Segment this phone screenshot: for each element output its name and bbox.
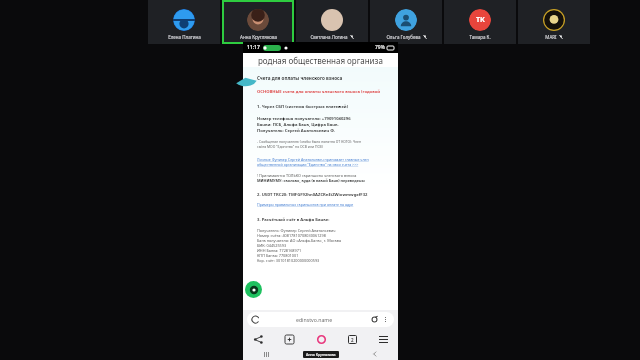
staticText: ТК xyxy=(476,15,485,25)
button[interactable]: Menu xyxy=(376,332,390,346)
staticText: 2 xyxy=(351,337,354,343)
button[interactable]: Анна Круглякова xyxy=(222,0,294,44)
button[interactable]: Home xyxy=(316,349,326,359)
staticText: Кор. счёт: 30101810200000000593 xyxy=(257,258,320,263)
button[interactable]: More options xyxy=(382,316,389,323)
staticText: 3. Расчётный счёт в Альфа Банке: xyxy=(257,217,330,223)
staticText: Счета для оплаты членского взноса xyxy=(257,75,343,81)
staticText: Банки: ПСБ, Альфа Банк, Цифра Банк. xyxy=(257,122,339,128)
staticText: Личные Фуникер Сергей Анатольевич приним… xyxy=(257,157,369,162)
staticText: Тамара К. xyxy=(469,34,491,40)
button[interactable]: MARI xyxy=(518,0,590,44)
other: Share page xyxy=(371,316,378,323)
button[interactable]: Светлана Логина xyxy=(296,0,368,44)
staticText: Номер телефона получателя: +79091040296 xyxy=(257,116,351,122)
button[interactable]: Chat xyxy=(245,281,262,298)
button[interactable]: Home xyxy=(314,332,328,346)
staticText: Анна Круглякова xyxy=(240,34,277,40)
staticText: 11:17 xyxy=(247,44,260,51)
staticText: БИК: 044525593 xyxy=(257,243,287,248)
button[interactable]: Share xyxy=(251,332,265,346)
button[interactable]: Reload xyxy=(247,312,394,327)
staticText: ! Принимаются ТОЛЬКО скриншоты членского… xyxy=(257,173,357,178)
staticText: общественной организации "Единство" на с… xyxy=(257,162,359,167)
staticText: Получатель: Фуникер Сергей Анатольевич xyxy=(257,228,336,233)
staticText: Получатель: Сергей Анатольевич Ф. xyxy=(257,128,336,134)
button[interactable]: Елена Платина xyxy=(148,0,220,44)
staticText: Номер счёта: 40817810708030061298 xyxy=(257,233,326,238)
staticText: 2. USDT TRC20: TMFGF92hn0AZCRnEiZWiowmwg… xyxy=(257,192,368,198)
staticText: Светлана Логина xyxy=(310,34,348,40)
staticText: ИНН Банка: 7728168971 xyxy=(257,248,302,253)
button[interactable]: New tab xyxy=(282,332,296,346)
staticText: Ольга Голубева xyxy=(386,34,421,40)
staticText: МИНИМУМУ: сколько, куда (в какой Банк) п… xyxy=(257,178,365,183)
staticText: Анна Круглякова xyxy=(306,352,336,357)
staticText: Банк получателя: АО «Альфа-Банк», г. Мос… xyxy=(257,238,342,243)
staticText: сайта МОО "Единство" по ОСВ или ПСВ) xyxy=(257,144,323,149)
staticText: родная общественная организа xyxy=(258,55,383,66)
button[interactable]: ТК xyxy=(444,0,516,44)
staticText: КПП Банка: 770801001 xyxy=(257,253,299,258)
button[interactable]: Ольга Голубева xyxy=(370,0,442,44)
other: Reload xyxy=(252,316,259,323)
staticText: - Сообщение получателю (чтобы было понят… xyxy=(257,139,362,144)
staticText: 79% xyxy=(375,44,385,51)
button[interactable]: Back xyxy=(370,349,380,359)
staticText: Елена Платина xyxy=(168,34,201,40)
staticText: MARI xyxy=(545,34,557,40)
staticText: edinstvo.name xyxy=(296,316,333,323)
staticText: Примеры правильных скриншотов при оплате… xyxy=(257,202,354,207)
staticText: 1. Через СБП (система быстрых платежей) xyxy=(257,104,349,110)
button[interactable]: Tabs xyxy=(345,332,359,346)
staticText: ОСНОВНЫЕ счета для оплаты членского взно… xyxy=(257,89,381,95)
button[interactable]: Recents xyxy=(261,349,271,359)
